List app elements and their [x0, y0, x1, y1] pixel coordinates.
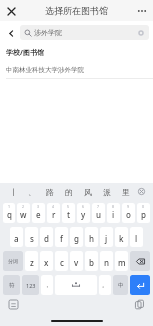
staticText: 风 — [84, 187, 92, 197]
staticText: p — [141, 209, 146, 220]
staticText: d — [44, 233, 49, 244]
button[interactable]: Close — [4, 4, 18, 18]
staticText: 涉外学院 — [34, 28, 62, 37]
staticText: 丨 — [10, 187, 18, 197]
button[interactable]: Backspace — [130, 251, 150, 271]
button[interactable]: 中 — [113, 275, 128, 295]
staticText: i — [112, 209, 115, 220]
button[interactable]: g — [70, 227, 83, 247]
button[interactable]: Clipboard — [134, 299, 145, 310]
button[interactable]: Space — [55, 275, 97, 295]
staticText: z — [30, 257, 34, 268]
button[interactable]: 4 — [47, 203, 60, 223]
staticText: h — [89, 233, 95, 244]
button[interactable]: 5 — [62, 203, 75, 223]
staticText: l — [135, 233, 138, 244]
staticText: 学校/图书馆 — [6, 48, 44, 58]
staticText: w — [20, 209, 27, 220]
staticText: 的 — [65, 187, 73, 197]
staticText: q — [7, 209, 12, 220]
button[interactable]: l — [130, 227, 143, 247]
button[interactable]: 、 — [23, 183, 41, 200]
button[interactable]: 123 — [22, 275, 39, 295]
button[interactable]: Close suggestions — [135, 183, 148, 200]
button[interactable]: m — [115, 251, 128, 271]
staticText: 符 — [9, 282, 15, 289]
button[interactable]: ， — [41, 275, 53, 295]
staticText: 、 — [28, 187, 36, 197]
button[interactable]: h — [85, 227, 98, 247]
button[interactable]: 7 — [92, 203, 105, 223]
staticText: g — [74, 233, 79, 244]
staticText: 中南林业科技大学涉外学院 — [6, 66, 84, 74]
button[interactable]: 中南林业科技大学涉外学院 — [0, 61, 153, 79]
staticText: 6 — [82, 204, 85, 209]
staticText: 8 — [112, 204, 115, 209]
staticText: m — [118, 257, 126, 268]
button[interactable]: 里 — [116, 183, 135, 200]
staticText: 中 — [118, 282, 124, 289]
staticText: 选择所在图书馆 — [45, 5, 108, 16]
staticText: 分词 — [8, 258, 18, 264]
staticText: e — [36, 209, 41, 220]
staticText: r — [52, 209, 56, 220]
staticText: 4 — [52, 204, 55, 209]
button[interactable]: d — [40, 227, 53, 247]
button[interactable]: k — [115, 227, 128, 247]
button[interactable]: 风 — [78, 183, 97, 200]
button[interactable]: 3 — [32, 203, 45, 223]
staticText: o — [126, 209, 131, 220]
staticText: 3 — [37, 204, 40, 209]
button[interactable]: b — [85, 251, 98, 271]
button[interactable]: 8 — [107, 203, 120, 223]
button[interactable]: 。 — [99, 275, 111, 295]
button[interactable]: 1 — [3, 203, 15, 223]
button[interactable]: s — [25, 227, 38, 247]
staticText: 2 — [22, 204, 25, 209]
staticText: t — [67, 209, 71, 220]
staticText: 派 — [103, 187, 111, 197]
button[interactable]: 派 — [97, 183, 116, 200]
button[interactable]: a — [10, 227, 23, 247]
staticText: j — [105, 233, 108, 244]
button[interactable]: 9 — [122, 203, 135, 223]
button[interactable]: Clear text — [137, 29, 145, 37]
staticText: b — [89, 257, 94, 268]
button[interactable]: 丨 — [5, 183, 23, 200]
button[interactable]: 6 — [77, 203, 90, 223]
button[interactable]: n — [100, 251, 113, 271]
staticText: 1 — [8, 204, 11, 209]
staticText: c — [60, 257, 64, 268]
staticText: k — [119, 233, 124, 244]
staticText: 里 — [122, 187, 130, 197]
button[interactable]: Keyboard layout — [8, 299, 19, 310]
button[interactable]: j — [100, 227, 113, 247]
staticText: 0 — [142, 204, 145, 209]
button[interactable]: 2 — [17, 203, 30, 223]
button[interactable]: Back — [4, 26, 18, 40]
staticText: a — [14, 233, 19, 244]
staticText: y — [81, 209, 86, 220]
button[interactable]: v — [70, 251, 83, 271]
staticText: 。 — [102, 281, 108, 289]
staticText: u — [96, 209, 102, 220]
button[interactable]: Enter — [130, 275, 150, 295]
staticText: v — [74, 257, 79, 268]
staticText: 7 — [97, 204, 100, 209]
button[interactable]: 的 — [59, 183, 78, 200]
button[interactable]: 路 — [41, 183, 59, 200]
button[interactable]: f — [55, 227, 68, 247]
staticText: ， — [44, 281, 50, 289]
button[interactable]: c — [55, 251, 68, 271]
staticText: 123 — [26, 282, 36, 289]
button[interactable]: 分词 — [3, 251, 23, 271]
staticText: f — [60, 233, 63, 244]
button[interactable]: x — [40, 251, 53, 271]
staticText: x — [44, 257, 49, 268]
button[interactable]: 涉外学院 — [20, 25, 149, 40]
button[interactable]: 0 — [137, 203, 150, 223]
staticText: n — [104, 257, 110, 268]
button[interactable]: z — [25, 251, 38, 271]
button[interactable]: More options — [135, 4, 149, 18]
button[interactable]: 符 — [3, 275, 20, 295]
